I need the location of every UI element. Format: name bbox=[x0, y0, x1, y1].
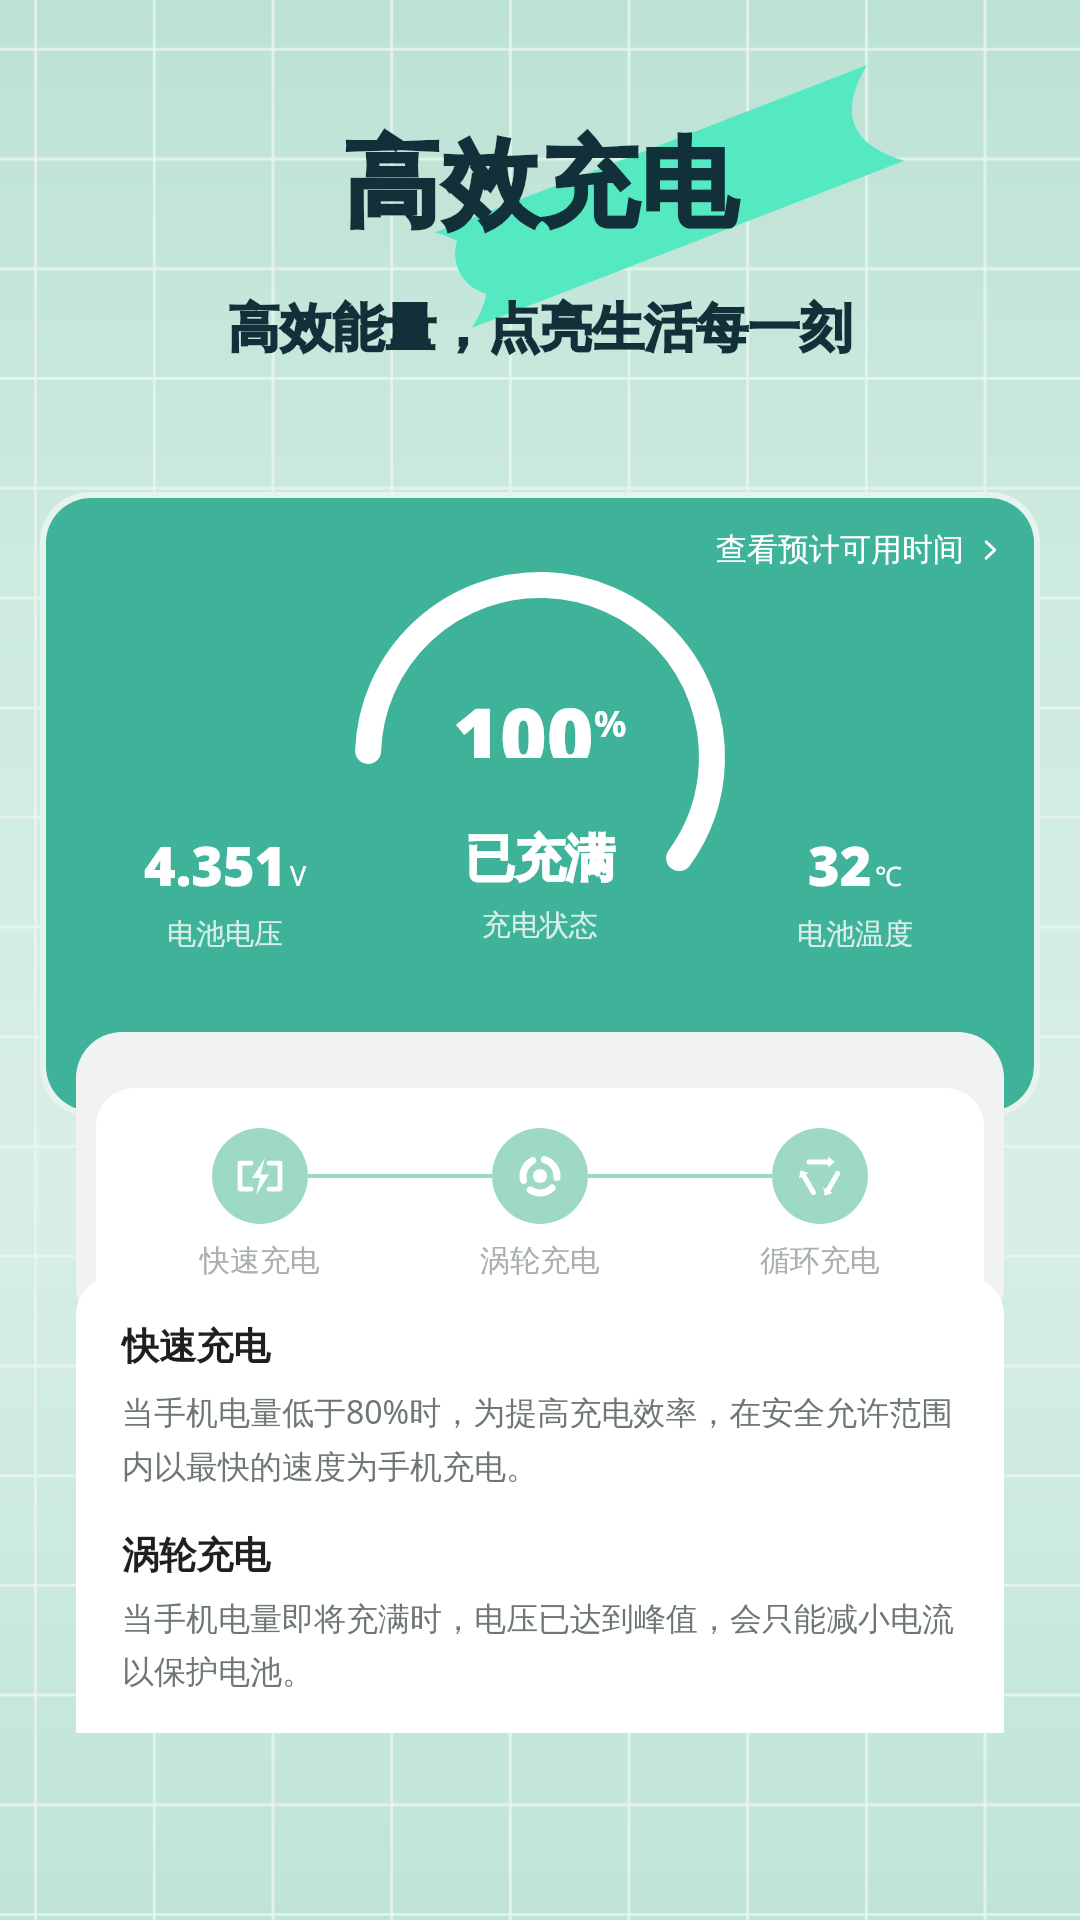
staticText: 电池电压 bbox=[167, 916, 283, 953]
staticText: 高效能量，点亮生活每一刻 bbox=[0, 296, 1080, 362]
staticText: 循环充电 bbox=[760, 1242, 880, 1280]
button[interactable]: 循环充电 bbox=[680, 1128, 960, 1280]
staticText: 32 bbox=[808, 828, 872, 902]
staticText: V bbox=[290, 857, 307, 894]
staticText: 当手机电量即将充满时，电压已达到峰值，会只能减小电流以保护电池。 bbox=[122, 1599, 960, 1693]
staticText: 快速充电 bbox=[200, 1242, 320, 1280]
staticText: % bbox=[594, 699, 627, 748]
staticText: 电池温度 bbox=[797, 916, 913, 953]
staticText: 4.351 bbox=[144, 828, 287, 902]
staticText: 涡轮充电 bbox=[480, 1242, 600, 1280]
staticText: 100 bbox=[453, 680, 594, 758]
button[interactable]: 查看预计可用时间 bbox=[708, 522, 1010, 577]
staticText: 充电状态 bbox=[482, 907, 598, 944]
staticText: 高效充电 bbox=[342, 125, 738, 246]
staticText: 查看预计可用时间 bbox=[716, 530, 964, 569]
staticText: 已充满 bbox=[465, 828, 615, 891]
staticText: 快速充电 bbox=[122, 1323, 270, 1370]
staticText: 当手机电量低于80%时，为提高充电效率，在安全允许范围内以最快的速度为手机充电。 bbox=[122, 1390, 960, 1488]
button[interactable]: 快速充电 bbox=[120, 1128, 400, 1280]
staticText: ℃ bbox=[875, 857, 902, 894]
button[interactable]: 涡轮充电 bbox=[400, 1128, 680, 1280]
staticText: 涡轮充电 bbox=[122, 1532, 270, 1579]
